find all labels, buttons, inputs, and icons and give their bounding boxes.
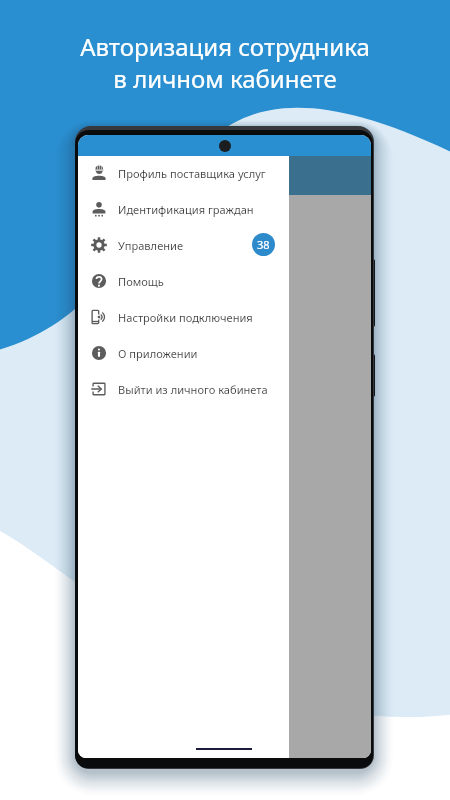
staticText: Помощь: [118, 274, 164, 289]
button[interactable]: Выйти из личного кабинета: [78, 371, 289, 407]
staticText: 38: [257, 237, 270, 252]
button[interactable]: Помощь: [78, 263, 289, 299]
button[interactable]: Настройки подключения: [78, 299, 289, 335]
staticText: Профиль поставщика услуг: [118, 166, 266, 181]
staticText: Идентификация граждан: [118, 202, 254, 217]
button[interactable]: Закрыть меню: [289, 156, 371, 758]
staticText: Настройки подключения: [118, 310, 253, 325]
staticText: Авторизация сотрудника в личном кабинете: [80, 30, 370, 95]
staticText: Управление: [118, 238, 184, 253]
button[interactable]: О приложении: [78, 335, 289, 371]
button[interactable]: Профиль поставщика услуг: [78, 155, 289, 191]
staticText: О приложении: [118, 346, 198, 361]
button[interactable]: Идентификация граждан: [78, 191, 289, 227]
staticText: Выйти из личного кабинета: [118, 382, 268, 397]
button[interactable]: Управление: [78, 227, 289, 263]
